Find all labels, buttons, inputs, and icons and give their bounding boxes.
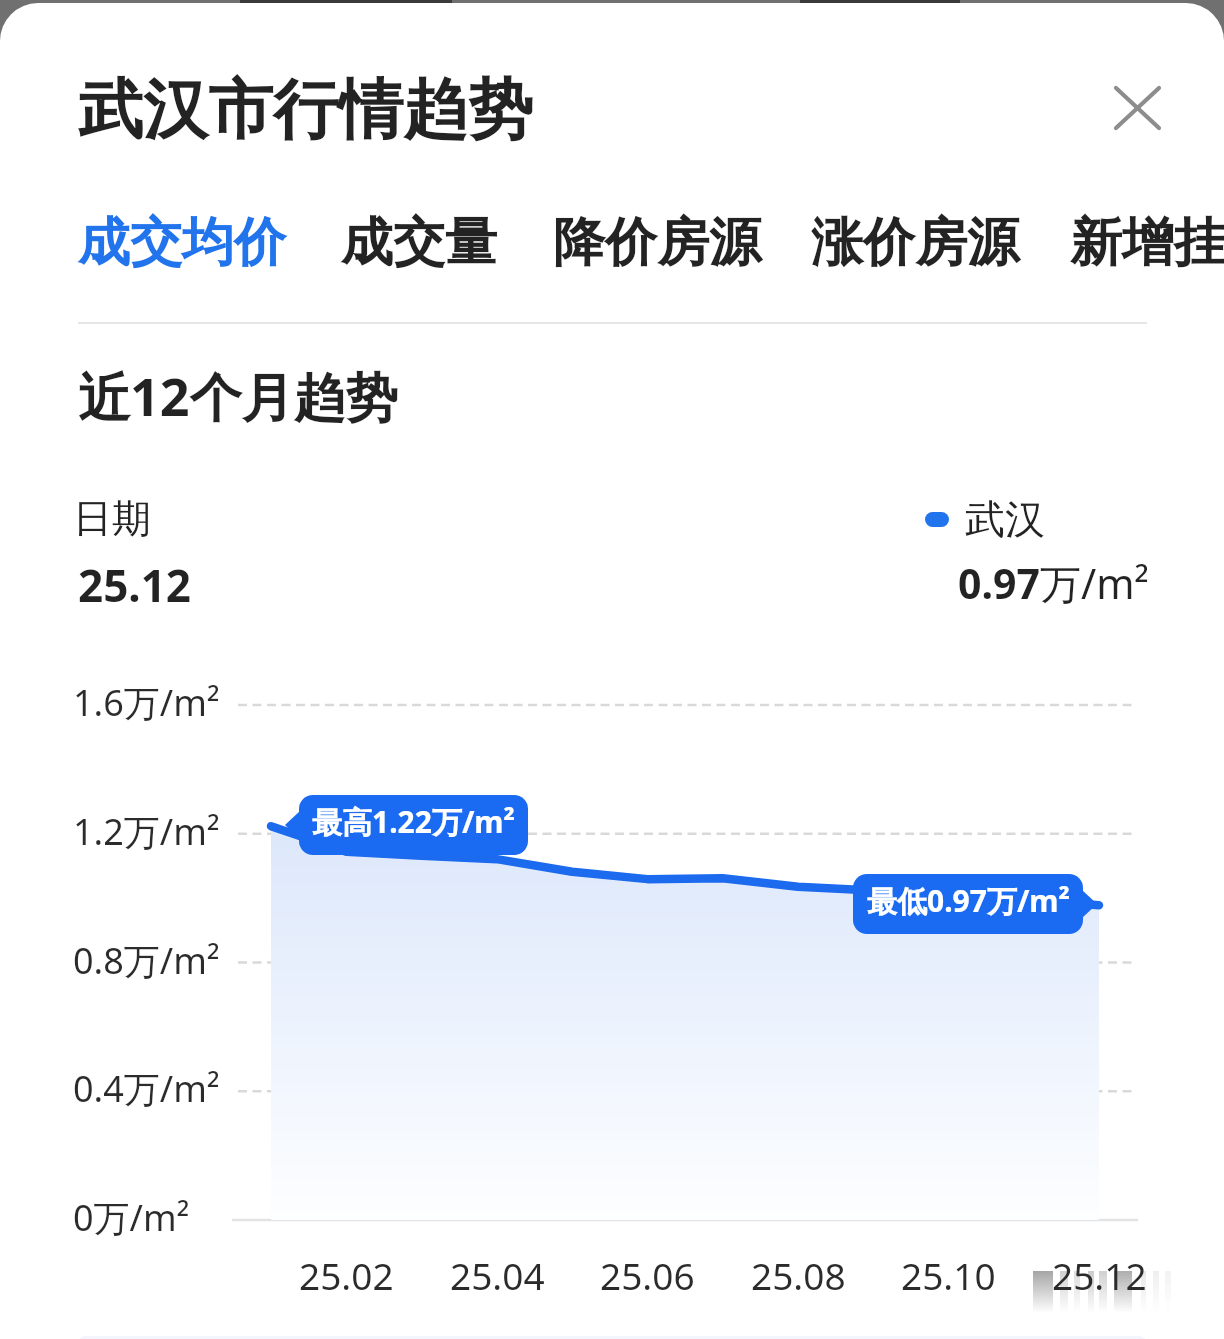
staticText: 成交量 xyxy=(341,210,497,276)
staticText: 0.97万/m² xyxy=(958,555,1149,611)
staticText: 日期 xyxy=(73,494,151,543)
staticText: 25.12 xyxy=(1052,1250,1147,1300)
button[interactable]: 降价房源 xyxy=(553,210,761,276)
staticText: 武汉 xyxy=(965,494,1045,544)
staticText: 25.10 xyxy=(901,1250,996,1300)
staticText: 涨价房源 xyxy=(811,210,1019,276)
staticText: 0万/m² xyxy=(73,1193,190,1242)
staticText: 25.02 xyxy=(299,1250,394,1300)
staticText: 1.6万/m² xyxy=(73,678,220,727)
staticText: 25.08 xyxy=(751,1250,846,1300)
staticText: 0.4万/m² xyxy=(73,1064,220,1113)
staticText: 武汉市行情趋势 xyxy=(78,69,533,151)
staticText: 成交均价 xyxy=(78,210,286,276)
staticText: 1.2万/m² xyxy=(73,807,220,856)
staticText: 0.8万/m² xyxy=(73,936,220,985)
button[interactable]: 成交均价 xyxy=(78,210,286,276)
staticText: 最高1.22万/m² xyxy=(312,801,515,842)
button[interactable]: 成交量 xyxy=(341,210,497,276)
staticText: 25.04 xyxy=(450,1250,545,1300)
button[interactable]: 涨价房源 xyxy=(811,210,1019,276)
staticText: 新增挂牌 xyxy=(1070,210,1224,276)
button[interactable]: 关闭 xyxy=(1093,63,1182,152)
staticText: 25.12 xyxy=(78,555,192,615)
button[interactable]: 新增挂牌 xyxy=(1070,210,1224,276)
staticText: 25.06 xyxy=(600,1250,695,1300)
staticText: 近12个月趋势 xyxy=(78,360,398,431)
staticText: 降价房源 xyxy=(553,210,761,276)
staticText: 最低0.97万/m² xyxy=(867,880,1070,921)
